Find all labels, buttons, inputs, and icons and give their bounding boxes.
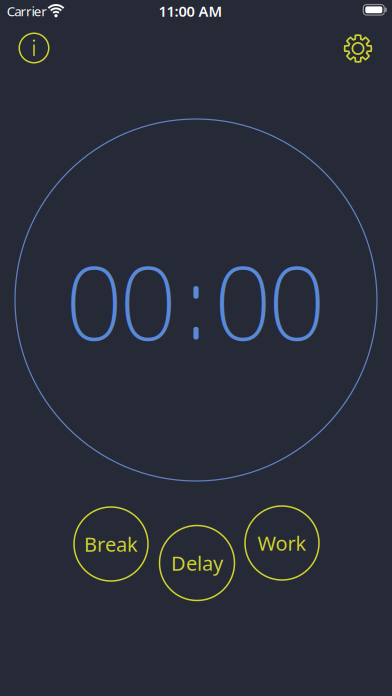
- staticText: 00: [214, 234, 326, 368]
- staticText: Delay: [171, 550, 223, 576]
- staticText: 00: [65, 234, 177, 368]
- staticText: 11:00 AM: [158, 1, 222, 21]
- staticText: Work: [257, 530, 306, 556]
- button[interactable]: Settings: [336, 26, 380, 70]
- staticText: Break: [84, 531, 138, 557]
- button[interactable]: Info: [12, 26, 56, 70]
- button[interactable]: Work: [245, 506, 319, 580]
- button[interactable]: Delay: [159, 525, 234, 600]
- staticText: Carrier: [7, 2, 47, 20]
- button[interactable]: Break: [74, 507, 148, 581]
